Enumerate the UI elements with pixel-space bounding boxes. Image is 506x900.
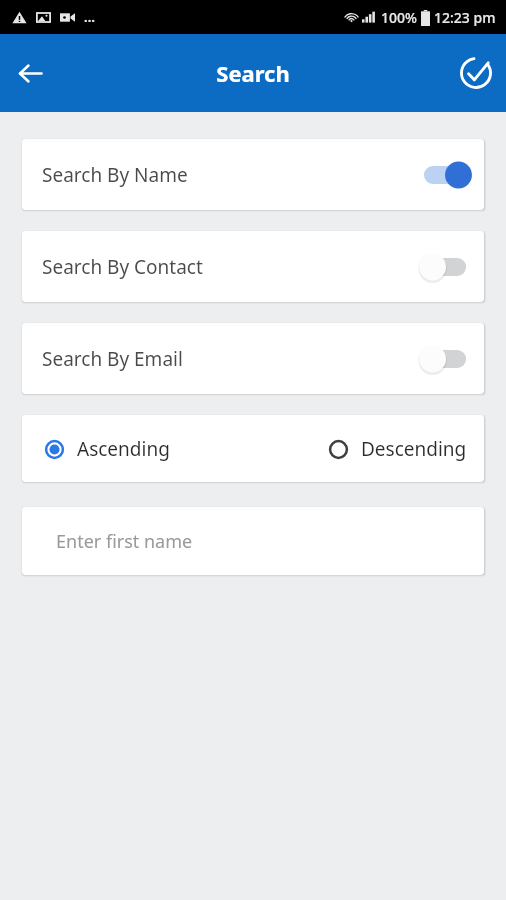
staticText: Enter first name bbox=[56, 529, 193, 554]
staticText: Ascending bbox=[77, 436, 170, 462]
button[interactable]: Search By Contact bbox=[22, 231, 484, 302]
staticText: ... bbox=[84, 8, 95, 26]
staticText: 100% bbox=[381, 8, 417, 27]
button[interactable]: Enter first name bbox=[22, 507, 484, 575]
button[interactable]: Back bbox=[8, 51, 52, 95]
button[interactable]: Descending bbox=[328, 436, 467, 462]
staticText: Search By Contact bbox=[42, 254, 203, 280]
button[interactable]: Search By Email off bbox=[422, 343, 470, 375]
staticText: Search By Name bbox=[42, 162, 188, 188]
staticText: Search By Email bbox=[42, 346, 183, 372]
button[interactable]: Confirm bbox=[454, 51, 498, 95]
button[interactable]: Search By Email bbox=[22, 323, 484, 394]
button[interactable]: Ascending bbox=[44, 436, 170, 462]
staticText: 12:23 pm bbox=[434, 8, 496, 27]
staticText: Search bbox=[216, 58, 290, 88]
staticText: Descending bbox=[361, 436, 467, 462]
button[interactable]: Search By Name bbox=[22, 139, 484, 210]
button[interactable]: Search By Contact off bbox=[422, 251, 470, 283]
button[interactable]: Search By Name on bbox=[422, 159, 470, 191]
